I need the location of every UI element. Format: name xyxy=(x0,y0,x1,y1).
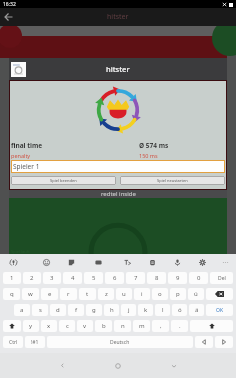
staticText: e xyxy=(48,290,52,298)
button[interactable]: , xyxy=(152,320,169,332)
staticText: f xyxy=(75,306,78,314)
button[interactable]: GIF xyxy=(90,254,106,270)
staticText: o xyxy=(158,290,162,298)
staticText: u xyxy=(122,290,126,298)
staticText: h xyxy=(110,306,114,314)
button[interactable]: Voice typing xyxy=(5,254,21,270)
staticText: 3 xyxy=(50,274,54,282)
button[interactable]: n xyxy=(114,320,131,332)
staticText: z xyxy=(105,290,108,298)
button[interactable]: o xyxy=(152,288,168,300)
button[interactable]: h xyxy=(104,304,119,316)
button[interactable]: More xyxy=(217,254,233,270)
staticText: Ctrl xyxy=(9,339,18,346)
button[interactable]: Tab preview xyxy=(11,62,26,77)
button[interactable]: Del xyxy=(210,272,233,284)
button[interactable]: Stickers xyxy=(63,254,79,270)
button[interactable]: 5 xyxy=(84,272,103,284)
button[interactable]: d xyxy=(50,304,66,316)
button[interactable]: p xyxy=(170,288,186,300)
button[interactable]: ö xyxy=(172,304,187,316)
button[interactable]: Shift xyxy=(190,320,233,332)
button[interactable]: 2 xyxy=(23,272,41,284)
button[interactable]: Backspace xyxy=(206,288,233,300)
button[interactable]: Settings xyxy=(194,254,210,270)
button[interactable]: Left xyxy=(195,336,213,348)
button[interactable]: ä xyxy=(189,304,204,316)
button[interactable]: y xyxy=(23,320,39,332)
button[interactable]: Back xyxy=(0,8,18,26)
staticText: c xyxy=(66,322,69,330)
button[interactable]: r xyxy=(60,288,77,300)
button[interactable]: q xyxy=(3,288,20,300)
button[interactable]: s xyxy=(32,304,48,316)
button[interactable]: 4 xyxy=(63,272,82,284)
staticText: 2 xyxy=(30,274,34,282)
button[interactable]: 9 xyxy=(168,272,187,284)
staticText: final time xyxy=(11,141,139,150)
button[interactable]: u xyxy=(116,288,132,300)
staticText: hitster xyxy=(107,12,129,22)
button[interactable]: t xyxy=(79,288,96,300)
button[interactable]: Home xyxy=(90,353,146,378)
button[interactable]: g xyxy=(86,304,102,316)
button[interactable]: Translate xyxy=(119,254,135,270)
button[interactable]: z xyxy=(98,288,114,300)
staticText: 1 xyxy=(10,274,14,282)
button[interactable]: m xyxy=(133,320,150,332)
button[interactable]: 7 xyxy=(126,272,145,284)
button[interactable]: c xyxy=(59,320,75,332)
button[interactable]: l xyxy=(155,304,170,316)
staticText: r xyxy=(67,290,70,298)
button[interactable]: ü xyxy=(188,288,204,300)
staticText: p xyxy=(176,290,180,298)
button[interactable]: Clipboard xyxy=(144,254,160,270)
button[interactable]: 0 xyxy=(189,272,208,284)
staticText: 8 xyxy=(155,274,159,282)
staticText: Spieler 1 xyxy=(13,162,40,171)
button[interactable]: b xyxy=(95,320,112,332)
staticText: 5 xyxy=(92,274,96,282)
button[interactable]: x xyxy=(41,320,57,332)
staticText: ö xyxy=(178,306,182,314)
staticText: n xyxy=(121,322,125,330)
button[interactable]: Spiel beenden xyxy=(11,176,116,185)
button[interactable]: e xyxy=(41,288,58,300)
button[interactable]: Spiel neustarten xyxy=(120,176,225,185)
staticText: 150 ms xyxy=(139,152,225,159)
button[interactable]: v xyxy=(77,320,93,332)
button[interactable]: OK xyxy=(206,304,233,316)
button[interactable]: Right xyxy=(215,336,233,348)
button[interactable]: Spieler 1 xyxy=(11,160,225,173)
button[interactable]: Deutsch xyxy=(47,336,193,348)
button[interactable]: 6 xyxy=(105,272,124,284)
button[interactable]: 8 xyxy=(147,272,166,284)
button[interactable]: 1 xyxy=(3,272,21,284)
staticText: penalty xyxy=(11,152,139,159)
button[interactable]: !#1 xyxy=(25,336,45,348)
staticText: 0 xyxy=(197,274,201,282)
button[interactable]: f xyxy=(68,304,84,316)
button[interactable]: k xyxy=(138,304,153,316)
button[interactable]: Emoji xyxy=(38,254,54,270)
staticText: 16:32 xyxy=(3,1,16,8)
button[interactable]: j xyxy=(121,304,136,316)
button[interactable]: a xyxy=(14,304,30,316)
button[interactable]: Microphone xyxy=(169,254,185,270)
button[interactable]: i xyxy=(134,288,150,300)
button[interactable]: . xyxy=(171,320,188,332)
staticText: i xyxy=(141,290,143,298)
staticText: d xyxy=(56,306,60,314)
staticText: Ø 574 ms xyxy=(139,141,225,150)
staticText: k xyxy=(144,306,148,314)
button[interactable]: Ctrl xyxy=(3,336,23,348)
button[interactable]: Shift xyxy=(3,320,21,332)
staticText: redtel inside xyxy=(101,190,136,198)
staticText: , xyxy=(160,322,162,330)
button[interactable]: w xyxy=(22,288,39,300)
button[interactable]: 3 xyxy=(43,272,61,284)
staticText: 9 xyxy=(176,274,180,282)
